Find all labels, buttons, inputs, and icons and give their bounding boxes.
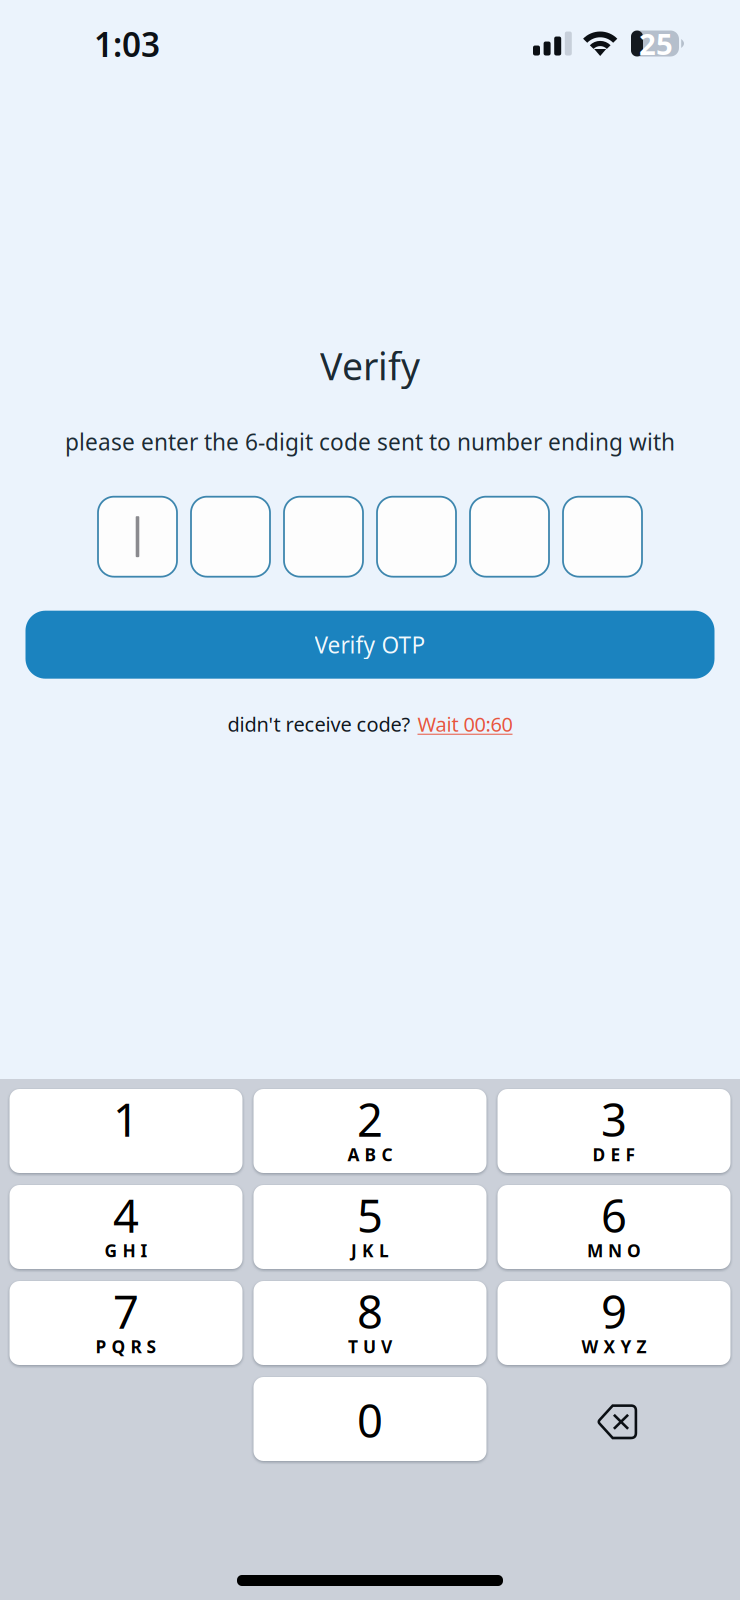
staticText: G H I <box>104 1239 147 1262</box>
button[interactable]: OTP digit <box>191 497 270 577</box>
staticText: 4 <box>113 1185 139 1245</box>
staticText: 6 <box>601 1185 627 1245</box>
button[interactable]: OTP digit <box>284 497 363 577</box>
staticText: 3 <box>601 1089 627 1149</box>
button[interactable]: 8 <box>253 1281 486 1365</box>
button[interactable]: 4 <box>9 1185 242 1269</box>
staticText: 0 <box>357 1390 383 1450</box>
button[interactable]: OTP digit <box>470 497 549 577</box>
staticText: Wait 00:60 <box>417 711 512 737</box>
staticText: 9 <box>601 1281 627 1341</box>
staticText: Verify OTP <box>314 630 425 660</box>
staticText: 1:03 <box>94 22 160 66</box>
staticText: 25 <box>639 24 673 63</box>
button[interactable]: OTP digit <box>563 497 642 577</box>
button[interactable]: 2 <box>253 1089 486 1173</box>
staticText: Verify <box>320 341 420 391</box>
staticText: D E F <box>592 1143 635 1166</box>
button[interactable]: 6 <box>497 1185 730 1269</box>
button[interactable]: 9 <box>497 1281 730 1365</box>
button[interactable]: Delete <box>497 1377 730 1461</box>
staticText: 7 <box>113 1281 139 1341</box>
staticText: 5 <box>357 1185 383 1245</box>
staticText: P Q R S <box>95 1335 156 1358</box>
button[interactable]: 1 <box>9 1089 242 1173</box>
button[interactable]: Wait 00:60 <box>417 711 512 737</box>
staticText: 2 <box>357 1089 383 1149</box>
staticText: 8 <box>357 1281 383 1341</box>
button[interactable]: OTP digit <box>98 497 177 577</box>
staticText: W X Y Z <box>581 1335 646 1358</box>
button[interactable]: Verify OTP <box>25 611 714 679</box>
staticText: 1 <box>113 1089 139 1149</box>
button[interactable]: 0 <box>253 1377 486 1461</box>
staticText: J K L <box>351 1239 389 1262</box>
staticText: T U V <box>348 1335 392 1358</box>
button[interactable]: 7 <box>9 1281 242 1365</box>
staticText: didn't receive code? <box>227 711 410 737</box>
button[interactable]: OTP digit <box>377 497 456 577</box>
staticText: please enter the 6-digit code sent to nu… <box>65 427 675 457</box>
staticText: M N O <box>587 1239 641 1262</box>
button[interactable]: 5 <box>253 1185 486 1269</box>
button[interactable]: 3 <box>497 1089 730 1173</box>
staticText: A B C <box>347 1143 392 1166</box>
